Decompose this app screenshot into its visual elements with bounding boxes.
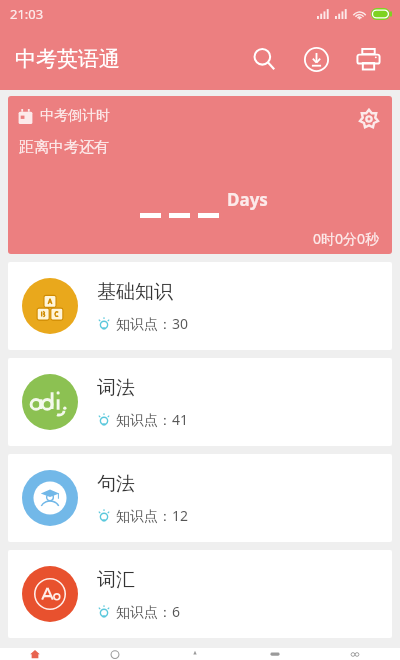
button[interactable]: Profile — [320, 648, 400, 660]
staticText: 句法 — [97, 472, 135, 496]
staticText: 词汇 — [97, 568, 135, 592]
staticText: 中考英语通 — [15, 46, 120, 72]
staticText: 知识点：6 — [116, 602, 181, 621]
staticText: 知识点：41 — [116, 410, 189, 429]
button[interactable]: 基础知识 — [8, 262, 392, 350]
button[interactable]: Discover — [80, 648, 160, 660]
button[interactable]: Home — [0, 648, 80, 660]
button[interactable]: Settings — [354, 104, 384, 134]
button[interactable]: Download — [294, 37, 338, 81]
staticText: 词法 — [97, 376, 135, 400]
button[interactable]: Search — [242, 37, 286, 81]
button[interactable]: Favorites — [160, 648, 240, 660]
staticText: 距离中考还有 — [19, 138, 109, 157]
button[interactable]: Books — [240, 648, 320, 660]
staticText: 基础知识 — [97, 280, 173, 304]
staticText: 0时0分0秒 — [313, 229, 380, 248]
staticText: 知识点：12 — [116, 506, 189, 525]
button[interactable]: 句法 — [8, 454, 392, 542]
staticText: 中考倒计时 — [40, 107, 110, 125]
staticText: 21:03 — [10, 5, 44, 23]
button[interactable]: 词法 — [8, 358, 392, 446]
button[interactable]: 词汇 — [8, 550, 392, 638]
staticText: 知识点：30 — [116, 314, 189, 333]
button[interactable]: 中考倒计时 — [8, 96, 392, 254]
staticText: Days — [227, 188, 268, 211]
button[interactable]: Print — [346, 37, 390, 81]
